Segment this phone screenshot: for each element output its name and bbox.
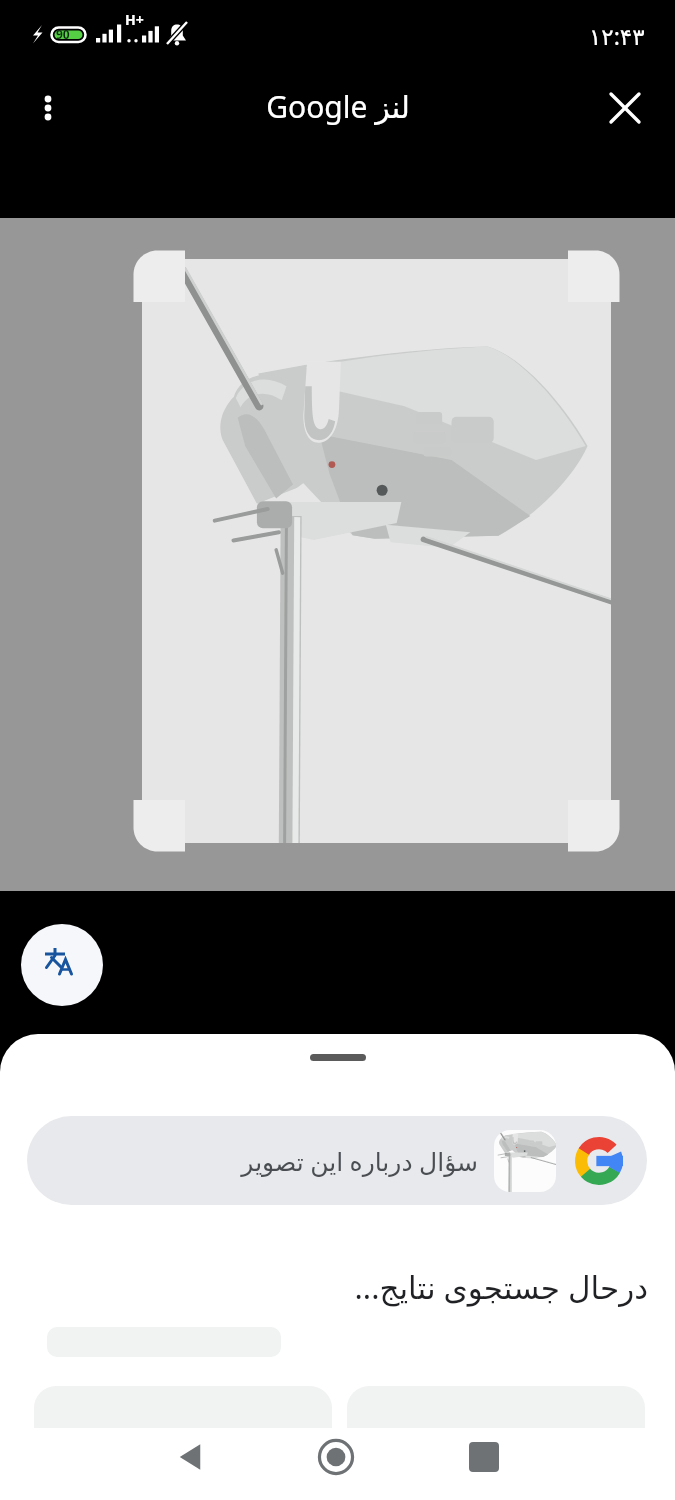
button[interactable]: More options: [16, 76, 80, 140]
button[interactable]: Back: [158, 1425, 222, 1489]
staticText: سؤال درباره این تصویر: [241, 1144, 478, 1178]
button[interactable]: سؤال درباره این تصویر: [27, 1116, 647, 1205]
staticText: درحال جستجوی نتایج...: [354, 1266, 648, 1308]
staticText: لنز Google: [266, 86, 410, 127]
button[interactable]: Translate: [21, 924, 103, 1006]
staticText: H+: [125, 10, 144, 29]
staticText: ۱۲:۴۳: [589, 20, 645, 51]
button[interactable]: Captured image, tap to re-select: [0, 218, 675, 891]
button[interactable]: Recent apps: [452, 1425, 516, 1489]
button[interactable]: Home: [304, 1425, 368, 1489]
button[interactable]: Close: [593, 76, 657, 140]
staticText: 90: [56, 26, 70, 42]
